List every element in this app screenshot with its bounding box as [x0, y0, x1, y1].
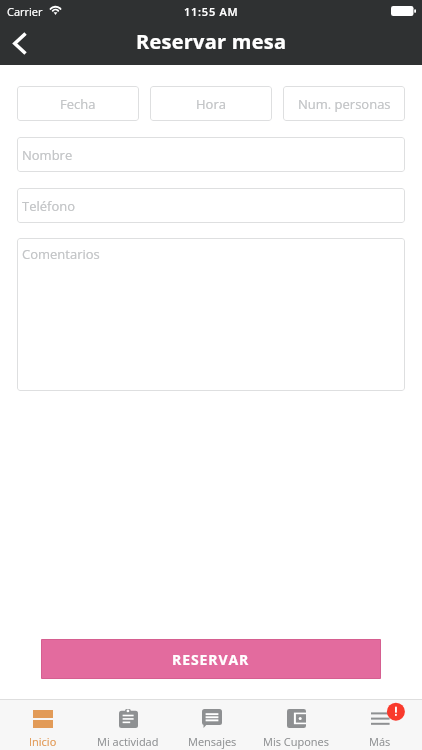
- button[interactable]: Fecha: [17, 86, 139, 121]
- button[interactable]: Mis Cupones: [254, 700, 338, 750]
- staticText: 11:55 AM: [184, 4, 239, 19]
- button[interactable]: Más: [338, 700, 422, 750]
- staticText: Inicio: [29, 734, 57, 749]
- staticText: Teléfono: [22, 197, 76, 215]
- button[interactable]: Teléfono: [17, 188, 405, 223]
- staticText: Nombre: [22, 146, 73, 164]
- button[interactable]: Inicio: [0, 700, 85, 750]
- staticText: Fecha: [60, 95, 96, 113]
- button[interactable]: Hora: [150, 86, 272, 121]
- button[interactable]: Nombre: [17, 137, 405, 172]
- button[interactable]: Mi actividad: [85, 700, 170, 750]
- button[interactable]: RESERVAR: [41, 639, 381, 679]
- staticText: Hora: [196, 95, 226, 113]
- button[interactable]: Mensajes: [170, 700, 254, 750]
- button[interactable]: Num. personas: [283, 86, 405, 121]
- staticText: Reservar mesa: [136, 28, 287, 55]
- staticText: Num. personas: [298, 95, 391, 113]
- staticText: Más: [369, 734, 391, 749]
- staticText: RESERVAR: [172, 650, 250, 669]
- staticText: Carrier: [7, 4, 43, 19]
- button[interactable]: Comentarios: [17, 238, 405, 391]
- staticText: Mis Cupones: [263, 734, 329, 749]
- staticText: Mensajes: [188, 734, 237, 749]
- button[interactable]: Back: [0, 22, 44, 65]
- staticText: Comentarios: [22, 245, 100, 263]
- staticText: Mi actividad: [97, 734, 159, 749]
